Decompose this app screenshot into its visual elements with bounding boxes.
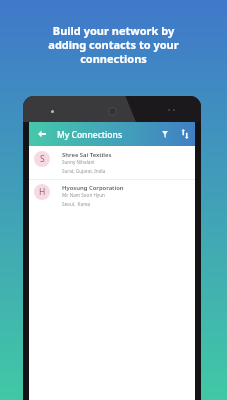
- button[interactable]: Filter: [158, 127, 172, 141]
- staticText: S: [40, 153, 45, 165]
- button[interactable]: Sort: [178, 127, 192, 141]
- staticText: Hyosung Corporation: [62, 184, 124, 192]
- staticText: My Connections: [57, 129, 123, 141]
- staticText: Surat, Gujarat, India: [62, 168, 106, 174]
- button[interactable]: Back: [35, 127, 49, 141]
- staticText: Shree Sai Textiles: [62, 151, 112, 159]
- staticText: Sunny Nihalani: [62, 159, 95, 165]
- staticText: Mr. Nam Soon Hyun: [62, 192, 105, 198]
- staticText: Build your network by adding contacts to…: [0, 23, 227, 66]
- button[interactable]: H: [29, 179, 195, 213]
- staticText: H: [39, 186, 46, 198]
- staticText: Seoul, Korea: [62, 201, 91, 207]
- button[interactable]: S: [29, 146, 195, 180]
